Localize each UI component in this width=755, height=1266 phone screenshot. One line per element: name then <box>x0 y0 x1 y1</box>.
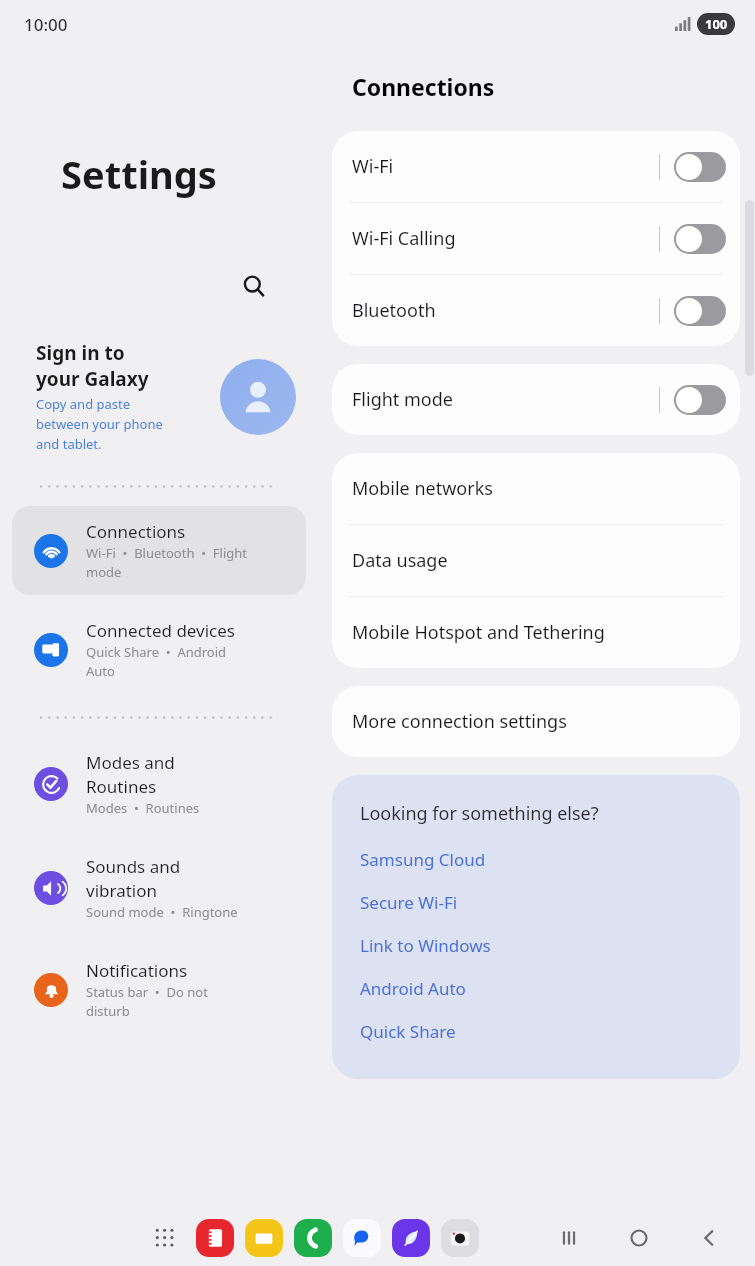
button[interactable]: Bluetooth <box>332 275 740 346</box>
staticText: Quick Share <box>360 1020 456 1043</box>
button[interactable]: Mobile networks <box>332 453 740 524</box>
button[interactable]: Flight mode toggle <box>674 385 726 415</box>
button[interactable]: Wi-Fi <box>332 131 740 202</box>
staticText: Connected devices <box>86 619 236 642</box>
staticText: Wi-Fi Calling <box>352 226 659 251</box>
staticText: Modes and Routines <box>86 751 175 798</box>
staticText: Sounds and vibration <box>86 855 181 902</box>
button[interactable]: Wi-Fi Calling <box>332 203 740 274</box>
staticText: Samsung Cloud <box>360 848 486 871</box>
staticText: Quick Share • Android Auto <box>86 643 227 680</box>
button[interactable]: Apps <box>148 1221 182 1255</box>
staticText: Bluetooth <box>352 298 659 323</box>
button[interactable]: Samsung Cloud <box>360 838 720 881</box>
staticText: Link to Windows <box>360 934 491 957</box>
staticText: Android Auto <box>360 977 466 1000</box>
staticText: Wi-Fi • Bluetooth • Flight mode <box>86 544 248 581</box>
button[interactable]: Link to Windows <box>360 924 720 967</box>
staticText: Connections <box>352 71 495 102</box>
button[interactable]: Mobile Hotspot and Tethering <box>332 597 740 668</box>
staticText: Settings <box>0 148 278 200</box>
button[interactable]: Flight mode <box>332 364 740 435</box>
staticText: Notifications <box>86 959 188 982</box>
button[interactable]: Data usage <box>332 525 740 596</box>
button[interactable]: More connection settings <box>332 686 740 757</box>
staticText: Looking for something else? <box>360 801 599 826</box>
button[interactable]: Notes <box>196 1219 234 1257</box>
button[interactable]: Recents <box>547 1216 591 1260</box>
staticText: Copy and paste between your phone and ta… <box>36 395 163 453</box>
button[interactable]: Files <box>245 1219 283 1257</box>
button[interactable]: Secure Wi-Fi <box>360 881 720 924</box>
button[interactable]: Home <box>617 1216 661 1260</box>
staticText: Sign in to <box>36 340 125 366</box>
staticText: Mobile Hotspot and Tethering <box>352 620 605 645</box>
staticText: Flight mode <box>352 387 659 412</box>
button[interactable]: Wi-Fi Calling toggle <box>674 224 726 254</box>
staticText: 10:00 <box>24 13 68 36</box>
staticText: your Galaxy <box>36 366 149 392</box>
staticText: Sound mode • Ringtone <box>86 903 238 921</box>
button[interactable]: Phone <box>294 1219 332 1257</box>
button[interactable]: Bluetooth toggle <box>674 296 726 326</box>
button[interactable]: Internet <box>392 1219 430 1257</box>
button[interactable]: Modes and Routines <box>12 737 306 831</box>
button[interactable]: Camera <box>441 1219 479 1257</box>
button[interactable]: Connections <box>12 506 306 595</box>
button[interactable]: Notifications <box>12 945 306 1034</box>
button[interactable]: Android Auto <box>360 967 720 1010</box>
staticText: 100 <box>705 15 728 33</box>
button[interactable]: Wi-Fi toggle <box>674 152 726 182</box>
button[interactable]: Sounds and vibration <box>12 841 306 935</box>
button[interactable]: Connected devices <box>12 605 306 694</box>
button[interactable]: Messages <box>343 1219 381 1257</box>
button[interactable]: Search <box>230 262 278 310</box>
staticText: Modes • Routines <box>86 799 200 817</box>
button[interactable]: Quick Share <box>360 1010 720 1053</box>
button[interactable]: Sign in to <box>36 340 296 453</box>
staticText: Wi-Fi <box>352 154 659 179</box>
staticText: Data usage <box>352 548 448 573</box>
staticText: More connection settings <box>352 709 567 734</box>
staticText: Connections <box>86 520 186 543</box>
staticText: Mobile networks <box>352 476 493 501</box>
staticText: Status bar • Do not disturb <box>86 983 208 1020</box>
button[interactable]: Back <box>687 1216 731 1260</box>
staticText: Secure Wi-Fi <box>360 891 458 914</box>
